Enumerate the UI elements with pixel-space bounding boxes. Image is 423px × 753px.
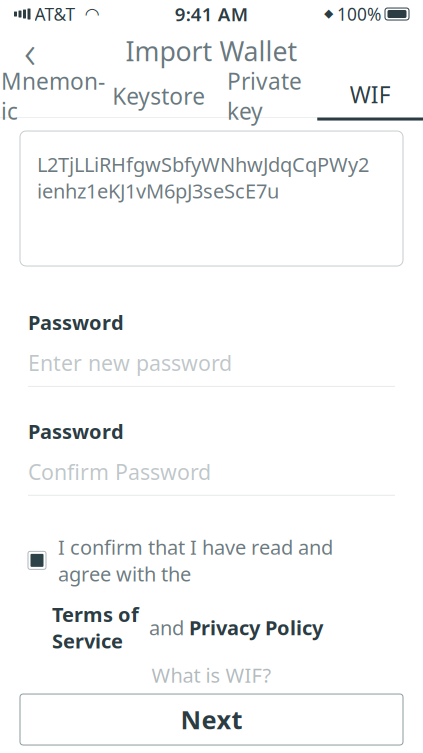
button[interactable]: Next <box>20 694 403 745</box>
button[interactable]: Terms of Service <box>52 601 144 654</box>
staticText: Password <box>28 309 124 336</box>
staticText: WIF <box>350 79 391 109</box>
button[interactable]: Confirm terms <box>28 551 46 569</box>
staticText: Private key <box>227 66 302 126</box>
staticText: 9:41 AM <box>175 2 248 26</box>
staticText: ‹ <box>24 21 36 81</box>
button[interactable]: Privacy Policy <box>189 614 323 641</box>
staticText: Keystore <box>112 81 205 111</box>
button[interactable]: What is WIF? <box>0 662 423 688</box>
staticText: and <box>144 614 189 641</box>
staticText: ⬥ <box>324 7 333 20</box>
staticText: Privacy Policy <box>189 614 323 641</box>
staticText: L2TjLLiRHfgwSbfyWNhwJdqCqPWy2ienhz1eKJ1v… <box>37 151 369 204</box>
button[interactable]: WIF <box>317 74 423 118</box>
staticText: What is WIF? <box>151 662 271 688</box>
staticText: AT&T <box>34 2 75 25</box>
staticText: Import Wallet <box>125 33 297 69</box>
staticText: Next <box>180 703 242 736</box>
staticText: Confirm Password <box>28 457 211 486</box>
staticText: Mnemonic <box>1 66 105 126</box>
button[interactable]: Private key <box>211 74 317 118</box>
staticText: Terms of Service <box>52 601 144 654</box>
staticText: Enter new password <box>28 349 232 377</box>
staticText: I confirm that I have read and agree wit… <box>58 534 333 587</box>
staticText: 100% <box>337 2 381 25</box>
button[interactable]: Back <box>8 29 52 73</box>
button[interactable]: Mnemonic <box>0 74 106 118</box>
staticText: ◠ <box>85 4 98 24</box>
staticText: Password <box>28 418 124 444</box>
button[interactable]: Keystore <box>106 74 212 118</box>
